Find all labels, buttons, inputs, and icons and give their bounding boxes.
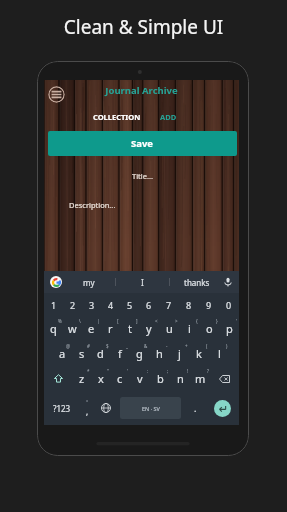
staticText: < <box>155 318 158 324</box>
staticText: { <box>196 318 198 324</box>
staticText: EN · SV <box>142 405 160 412</box>
button[interactable]: Google <box>50 276 62 288</box>
staticText: Description... <box>69 200 116 210</box>
staticText: e <box>88 321 95 336</box>
staticText: > <box>175 318 178 324</box>
button[interactable]: f <box>110 341 129 366</box>
button[interactable]: z <box>72 366 91 391</box>
button[interactable]: q <box>44 316 63 341</box>
staticText: ' <box>236 318 238 324</box>
button[interactable]: Change language <box>96 391 115 425</box>
button[interactable]: Save <box>48 131 237 156</box>
staticText: } <box>216 318 218 324</box>
staticText: o <box>206 321 213 336</box>
staticText: * <box>87 368 90 374</box>
button[interactable]: 9 <box>199 293 219 316</box>
staticText: # <box>87 343 90 349</box>
staticText: v <box>137 371 143 386</box>
button[interactable]: o <box>199 316 219 341</box>
button[interactable]: Shift <box>44 366 72 391</box>
button[interactable]: 0 <box>219 293 239 316</box>
staticText: l <box>218 346 221 361</box>
staticText: x <box>98 371 104 386</box>
button[interactable]: d <box>91 341 110 366</box>
button[interactable]: g <box>129 341 149 366</box>
button[interactable]: c <box>110 366 130 391</box>
staticText: 0 <box>226 299 232 311</box>
staticText: \ <box>79 318 81 324</box>
staticText: 9 <box>206 299 212 311</box>
button[interactable]: . <box>186 391 205 425</box>
button[interactable]: ° <box>79 391 96 425</box>
button[interactable]: COLLECTION <box>91 109 143 125</box>
staticText: q <box>50 321 57 336</box>
staticText: my <box>83 277 95 288</box>
staticText: ? <box>207 368 209 374</box>
button[interactable]: 6 <box>139 293 159 316</box>
button[interactable]: 8 <box>179 293 199 316</box>
button[interactable]: v <box>130 366 150 391</box>
staticText: Save <box>131 137 154 150</box>
staticText: g <box>136 346 143 361</box>
button[interactable]: i <box>179 316 199 341</box>
staticText: ?123 <box>53 403 71 414</box>
button[interactable]: Enter <box>214 400 231 417</box>
staticText: y <box>146 321 152 336</box>
button[interactable]: u <box>159 316 179 341</box>
staticText: 4 <box>108 299 114 311</box>
button[interactable]: n <box>170 366 190 391</box>
button[interactable]: p <box>219 316 239 341</box>
button[interactable]: l <box>209 341 229 366</box>
button[interactable]: Menu <box>48 86 65 103</box>
button[interactable]: thanks <box>170 271 223 293</box>
button[interactable]: 4 <box>101 293 120 316</box>
button[interactable]: m <box>190 366 210 391</box>
button[interactable]: k <box>189 341 209 366</box>
button[interactable]: s <box>72 341 91 366</box>
staticText: " <box>107 368 109 374</box>
button[interactable]: I <box>116 271 169 293</box>
button[interactable]: y <box>139 316 159 341</box>
staticText: ! <box>187 368 189 374</box>
staticText: ADD <box>160 112 177 122</box>
button[interactable]: 1 <box>44 293 63 316</box>
staticText: w <box>68 321 77 336</box>
staticText: n <box>177 371 184 386</box>
button[interactable]: t <box>120 316 139 341</box>
staticText: r <box>108 321 113 336</box>
staticText: I <box>141 277 144 288</box>
staticText: + <box>185 343 188 349</box>
button[interactable]: w <box>63 316 82 341</box>
staticText: Journal Archive <box>44 84 239 97</box>
staticText: ' <box>127 368 129 374</box>
staticText: k <box>196 346 202 361</box>
button[interactable]: 5 <box>120 293 139 316</box>
staticText: f <box>118 346 122 361</box>
button[interactable]: x <box>91 366 110 391</box>
button[interactable]: Voice input <box>223 277 233 287</box>
button[interactable]: ?123 <box>44 391 79 425</box>
button[interactable]: 7 <box>159 293 179 316</box>
staticText: s <box>79 346 85 361</box>
button[interactable]: EN · SV <box>120 397 181 419</box>
staticText: _ <box>126 343 128 349</box>
button[interactable]: ADD <box>155 109 181 125</box>
button[interactable]: my <box>62 271 115 293</box>
button[interactable]: 2 <box>63 293 82 316</box>
button[interactable]: e <box>82 316 101 341</box>
staticText: b <box>157 371 164 386</box>
button[interactable]: a <box>53 341 72 366</box>
staticText: ( <box>206 343 208 349</box>
button[interactable]: h <box>149 341 169 366</box>
staticText: u <box>166 321 173 336</box>
button[interactable]: r <box>101 316 120 341</box>
staticText: Title... <box>132 171 154 181</box>
staticText: COLLECTION <box>93 112 141 122</box>
staticText: 7 <box>166 299 172 311</box>
staticText: 1 <box>51 299 57 311</box>
button[interactable]: b <box>150 366 170 391</box>
staticText: t <box>128 321 132 336</box>
button[interactable]: j <box>169 341 189 366</box>
button[interactable]: 3 <box>82 293 101 316</box>
button[interactable]: Backspace <box>210 366 239 391</box>
